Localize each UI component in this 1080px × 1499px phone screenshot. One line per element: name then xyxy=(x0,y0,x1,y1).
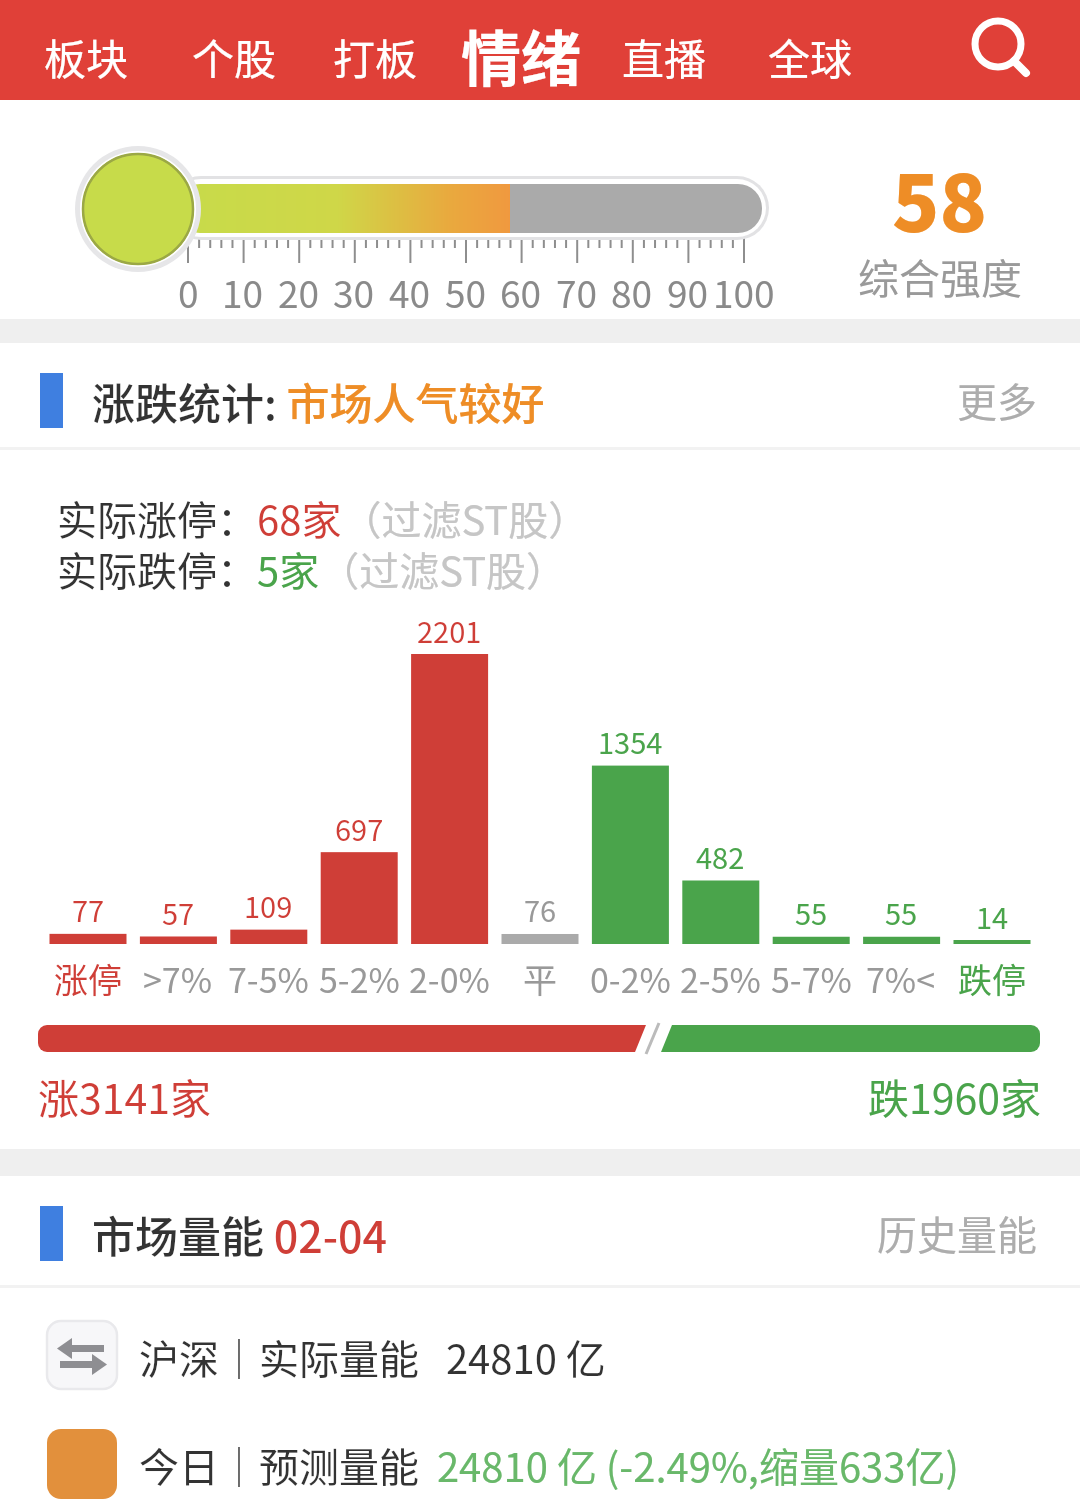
staticText: 80 xyxy=(611,265,653,319)
staticText: 90 xyxy=(667,265,709,319)
staticText: 7%< xyxy=(866,954,936,1003)
staticText: 0-2% xyxy=(590,954,671,1003)
staticText: 697 xyxy=(335,807,384,849)
staticText: 跌停 xyxy=(958,954,1026,1003)
button[interactable]: 直播 xyxy=(604,28,724,84)
button[interactable]: 更多 xyxy=(837,377,1037,423)
staticText: 市场量能 02-04 xyxy=(92,1203,388,1265)
button[interactable]: 全球 xyxy=(750,28,870,84)
staticText: 涨3141家 xyxy=(38,1066,212,1125)
staticText: 20 xyxy=(278,265,320,319)
staticText: 2-0% xyxy=(409,954,490,1003)
button[interactable] xyxy=(966,13,1034,81)
staticText: 10 xyxy=(222,265,264,319)
staticText: 50 xyxy=(445,265,487,319)
staticText: 今日｜预测量能 24810 亿 (-2.49%,缩量633亿) xyxy=(139,1436,960,1494)
staticText: 跌1960家 xyxy=(868,1066,1042,1125)
staticText: 77 xyxy=(72,888,105,930)
staticText: 30 xyxy=(333,265,375,319)
staticText: 实际跌停：5家（过滤ST股） xyxy=(57,540,567,598)
staticText: >7% xyxy=(143,954,213,1003)
staticText: 涨停 xyxy=(54,954,122,1003)
staticText: 100 xyxy=(713,265,775,319)
staticText: 历史量能 xyxy=(877,1204,1037,1262)
staticText: 70 xyxy=(556,265,598,319)
button[interactable]: 沪深｜实际量能 24810 亿 xyxy=(0,1306,1080,1406)
staticText: 58 xyxy=(892,142,988,255)
staticText: 55 xyxy=(795,891,828,933)
staticText: 5-2% xyxy=(319,954,400,1003)
staticText: 7-5% xyxy=(228,954,309,1003)
staticText: 个股 xyxy=(192,26,277,87)
staticText: 40 xyxy=(389,265,431,319)
staticText: 109 xyxy=(244,884,293,926)
staticText: 2201 xyxy=(417,609,482,651)
staticText: 实际涨停：68家（过滤ST股） xyxy=(57,489,589,547)
staticText: 情绪 xyxy=(461,11,581,98)
button[interactable]: 历史量能 xyxy=(837,1210,1037,1256)
staticText: 57 xyxy=(162,891,195,933)
staticText: 2-5% xyxy=(680,954,761,1003)
button[interactable]: 个股 xyxy=(174,28,294,84)
staticText: 60 xyxy=(500,265,542,319)
staticText: 55 xyxy=(885,891,918,933)
button[interactable]: 今日｜预测量能 24810 亿 (-2.49%,缩量633亿) xyxy=(0,1414,1080,1499)
staticText: 板块 xyxy=(44,26,129,87)
staticText: 14 xyxy=(976,895,1009,937)
staticText: 全球 xyxy=(768,26,853,87)
staticText: 打板 xyxy=(333,26,418,87)
staticText: 直播 xyxy=(622,26,707,87)
staticText: 综合强度 xyxy=(858,246,1022,305)
button[interactable]: 情绪 xyxy=(441,14,601,94)
staticText: 5-7% xyxy=(771,954,852,1003)
staticText: 76 xyxy=(524,888,557,930)
staticText: 平 xyxy=(523,954,557,1003)
staticText: 涨跌统计: 市场人气较好 xyxy=(92,370,545,432)
staticText: 482 xyxy=(696,835,745,877)
staticText: 更多 xyxy=(957,371,1037,429)
staticText: 0 xyxy=(178,265,199,319)
button[interactable]: 板块 xyxy=(26,28,146,84)
button[interactable]: 打板 xyxy=(315,28,435,84)
staticText: 1354 xyxy=(598,720,663,762)
staticText: 沪深｜实际量能 24810 亿 xyxy=(139,1328,606,1386)
